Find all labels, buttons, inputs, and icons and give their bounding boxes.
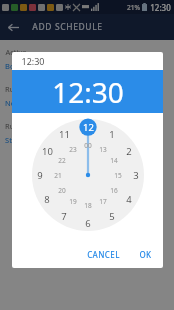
staticText: Both [5, 61, 22, 71]
staticText: Active [5, 47, 27, 57]
staticText: OK [139, 249, 152, 260]
staticText: 23 [69, 145, 77, 154]
button[interactable]: Back [0, 14, 26, 40]
staticText: 22 [58, 156, 66, 165]
button[interactable]: OK [134, 245, 157, 264]
button[interactable]: 12:30 [12, 70, 163, 113]
staticText: 19 [69, 197, 77, 206]
staticText: 12 [83, 121, 94, 134]
staticText: ADD SCHEDULE [32, 21, 103, 33]
staticText: Never [5, 98, 26, 108]
staticText: 18 [84, 201, 92, 210]
staticText: 3 [133, 169, 139, 182]
staticText: 13 [99, 145, 107, 154]
staticText: 12:30 [52, 73, 124, 111]
staticText: Start [5, 135, 22, 145]
staticText: 16 [110, 186, 118, 195]
staticText: 1 [109, 128, 115, 141]
staticText: 21 [54, 171, 62, 180]
staticText: Run [5, 121, 19, 131]
staticText: 17 [99, 197, 107, 206]
staticText: 5 [109, 210, 115, 223]
staticText: 7 [61, 210, 67, 223]
staticText: 8 [44, 193, 50, 206]
staticText: 11 [59, 128, 70, 141]
staticText: 9 [37, 169, 43, 182]
staticText: Run [5, 84, 19, 94]
staticText: CANCEL [87, 249, 120, 260]
staticText: 2 [126, 145, 132, 158]
staticText: 12:30 [21, 55, 45, 67]
staticText: 21% [127, 3, 140, 12]
staticText: 4 [126, 193, 132, 206]
staticText: 10 [42, 145, 53, 158]
staticText: 20 [58, 186, 66, 195]
staticText: 14 [110, 156, 118, 165]
button[interactable]: Clock face [32, 119, 144, 231]
staticText: 00 [84, 141, 92, 150]
button[interactable]: CANCEL [82, 245, 125, 264]
staticText: 12:30 [150, 2, 171, 13]
staticText: 6 [85, 217, 91, 230]
staticText: 15 [114, 171, 122, 180]
